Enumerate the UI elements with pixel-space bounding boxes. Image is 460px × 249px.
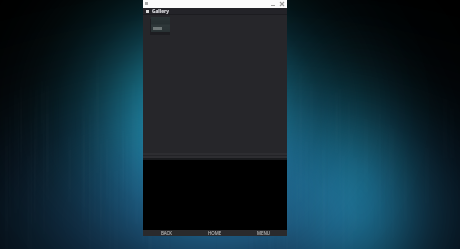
staticText: Gallery xyxy=(152,8,169,14)
staticText: HOME xyxy=(208,230,222,236)
button[interactable]: Minimize xyxy=(269,0,277,8)
button[interactable]: BACK xyxy=(143,230,191,236)
button[interactable]: MENU xyxy=(239,230,287,236)
staticText: BACK xyxy=(161,230,173,236)
button[interactable]: HOME xyxy=(191,230,239,236)
button[interactable]: Close xyxy=(278,0,286,8)
button[interactable] xyxy=(151,17,170,32)
staticText: MENU xyxy=(257,230,270,236)
